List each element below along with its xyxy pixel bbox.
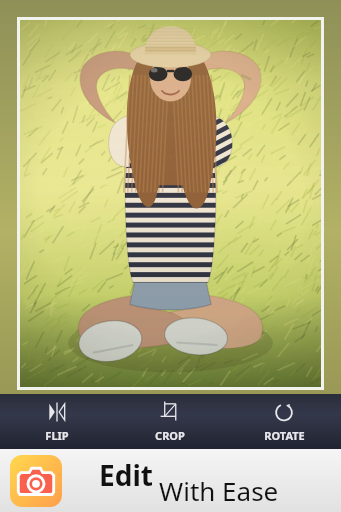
- button[interactable]: App icon: [0, 449, 341, 512]
- staticText: FLIP: [45, 428, 69, 443]
- staticText: With Ease: [159, 473, 279, 508]
- other: App icon: [10, 455, 62, 507]
- staticText: ROTATE: [264, 428, 305, 443]
- button[interactable]: ROTATE: [227, 394, 341, 449]
- staticText: Edit: [99, 456, 153, 494]
- staticText: CROP: [155, 428, 185, 443]
- button[interactable]: CROP: [113, 394, 227, 449]
- button[interactable]: FLIP: [0, 394, 113, 449]
